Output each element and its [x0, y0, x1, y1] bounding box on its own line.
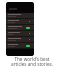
button[interactable]: App bar — [6, 2, 34, 13]
button[interactable] — [6, 43, 34, 49]
button[interactable] — [6, 25, 34, 31]
staticText: articles and stories. — [11, 61, 53, 67]
button[interactable] — [6, 19, 34, 25]
button[interactable]: Bottom navigation — [6, 49, 34, 56]
button[interactable] — [6, 13, 34, 19]
button[interactable] — [6, 37, 34, 43]
staticText: The world's best — [14, 56, 50, 62]
button[interactable] — [6, 31, 34, 37]
